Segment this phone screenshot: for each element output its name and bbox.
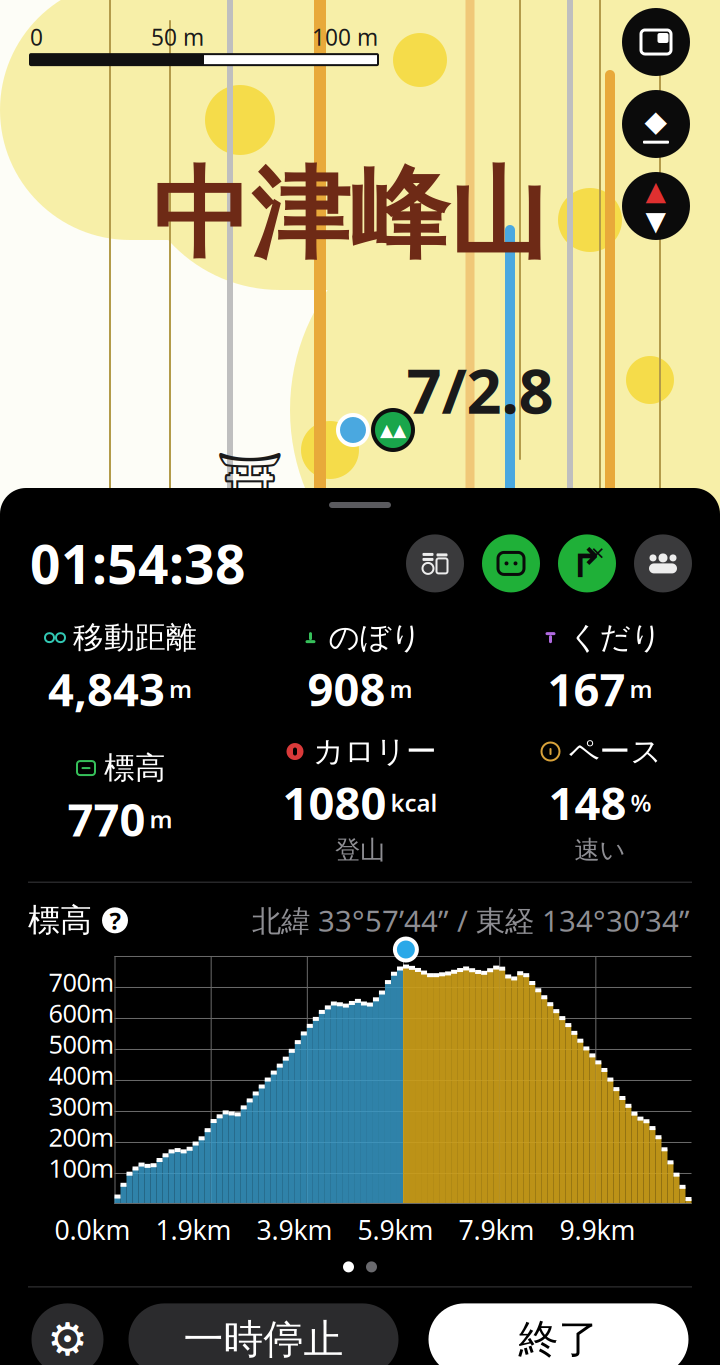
staticText: 3.9km [256, 1212, 332, 1247]
staticText: 5.9km [357, 1212, 433, 1247]
staticText: 中津峰山 [152, 154, 548, 276]
staticText: 1080 [282, 772, 386, 833]
button[interactable]: Map layers [622, 90, 690, 158]
staticText: m [389, 673, 412, 705]
staticText: カロリー [313, 733, 437, 770]
staticText: 北緯 33°57’44” / 東経 134°30’34” [252, 901, 690, 940]
staticText: m [149, 803, 172, 835]
staticText: m [169, 673, 192, 705]
button[interactable]: Post note [482, 534, 540, 592]
staticText: 9.9km [559, 1212, 635, 1247]
staticText: ? [109, 904, 120, 936]
staticText: 一時停止 [183, 1315, 343, 1364]
staticText: 標高 [28, 901, 92, 940]
staticText: くだり [568, 619, 661, 656]
staticText: 50 m [151, 22, 204, 52]
staticText: 100 m [312, 22, 378, 52]
button[interactable]: Resize map [622, 8, 690, 76]
staticText: ▲ [645, 176, 666, 206]
staticText: 300m [48, 1089, 114, 1123]
button[interactable]: Settings [31, 1303, 103, 1365]
staticText: 908 [307, 658, 385, 719]
staticText: ◆ [644, 104, 667, 138]
staticText: ⚙ [47, 1314, 88, 1365]
staticText: kcal [390, 786, 437, 818]
staticText: 7.9km [458, 1212, 534, 1247]
staticText: 4,843 [48, 658, 165, 719]
staticText: 0.0km [54, 1212, 130, 1247]
staticText: 770 [67, 789, 145, 849]
staticText: 400m [48, 1058, 114, 1092]
button[interactable]: Compass [622, 172, 690, 240]
staticText: 200m [48, 1120, 114, 1154]
staticText: ▼ [645, 206, 666, 236]
staticText: 移動距離 [73, 619, 197, 656]
staticText: 01:54:38 [30, 528, 246, 599]
staticText: 600m [48, 996, 114, 1030]
staticText: ✕ [590, 544, 605, 563]
staticText: % [630, 786, 651, 818]
staticText: 700m [48, 965, 114, 999]
staticText: 登山 [335, 835, 385, 866]
staticText: ↱ [570, 541, 604, 586]
staticText: 100m [48, 1151, 114, 1185]
staticText: ペース [568, 733, 661, 770]
staticText: 167 [547, 658, 625, 719]
staticText: 148 [548, 772, 626, 833]
button[interactable]: Members [634, 534, 692, 592]
staticText: 終了 [518, 1315, 598, 1364]
staticText: 1.9km [155, 1212, 231, 1247]
staticText: m [629, 673, 652, 705]
staticText: 500m [48, 1027, 114, 1061]
button[interactable]: 標高 [28, 901, 128, 940]
button[interactable]: 一時停止 [128, 1303, 398, 1365]
staticText: 標高 [104, 749, 166, 787]
staticText: ⛩ [216, 449, 284, 510]
staticText: のぼり [328, 619, 421, 656]
button[interactable]: 終了 [428, 1303, 688, 1365]
staticText: ▲▲ [380, 420, 406, 440]
button[interactable]: Route options [558, 534, 616, 592]
button[interactable]: Waypoints [406, 534, 464, 592]
staticText: 0 [30, 22, 43, 52]
staticText: 速い [574, 835, 625, 866]
staticText: 7/2.8 [406, 349, 553, 431]
